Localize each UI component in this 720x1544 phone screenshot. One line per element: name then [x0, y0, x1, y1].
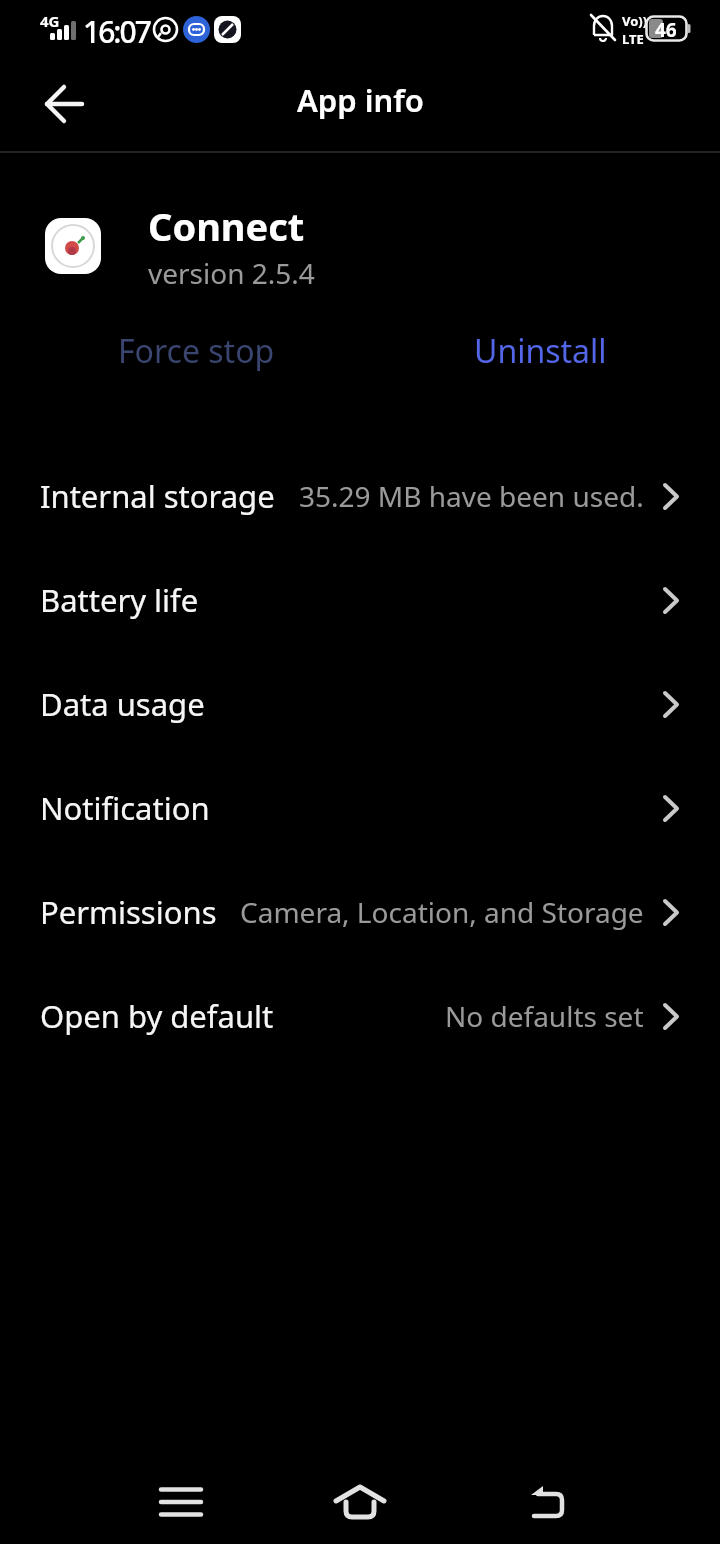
staticText: LTE: [622, 30, 644, 48]
button[interactable]: Open by default: [0, 964, 720, 1068]
button[interactable]: Battery life: [0, 548, 720, 652]
staticText: Vo)): [622, 12, 648, 30]
button[interactable]: Notification: [0, 756, 720, 860]
button[interactable]: [150, 1472, 212, 1532]
staticText: Force stop: [118, 329, 275, 373]
button[interactable]: Permissions: [0, 860, 720, 964]
button[interactable]: Internal storage: [0, 444, 720, 548]
staticText: Open by default: [40, 995, 274, 1037]
staticText: Internal storage: [40, 475, 275, 517]
staticText: 46: [655, 17, 677, 43]
button[interactable]: Uninstall: [360, 318, 720, 384]
staticText: Battery life: [40, 579, 199, 621]
button[interactable]: [329, 1472, 391, 1532]
button[interactable]: [45, 85, 85, 123]
staticText: Notification: [40, 787, 210, 829]
button[interactable]: [517, 1472, 579, 1532]
button[interactable]: Force stop: [16, 318, 376, 384]
staticText: Connect: [148, 200, 305, 252]
staticText: Uninstall: [474, 329, 607, 373]
staticText: Camera, Location, and Storage: [240, 893, 644, 931]
staticText: version 2.5.4: [148, 254, 315, 292]
staticText: 16:07: [83, 11, 150, 52]
staticText: Permissions: [40, 891, 217, 933]
staticText: 35.29 MB have been used.: [299, 477, 644, 515]
staticText: Data usage: [40, 683, 205, 725]
staticText: 4G: [40, 11, 60, 31]
button[interactable]: Data usage: [0, 652, 720, 756]
staticText: No defaults set: [445, 997, 644, 1035]
staticText: App info: [297, 79, 424, 121]
